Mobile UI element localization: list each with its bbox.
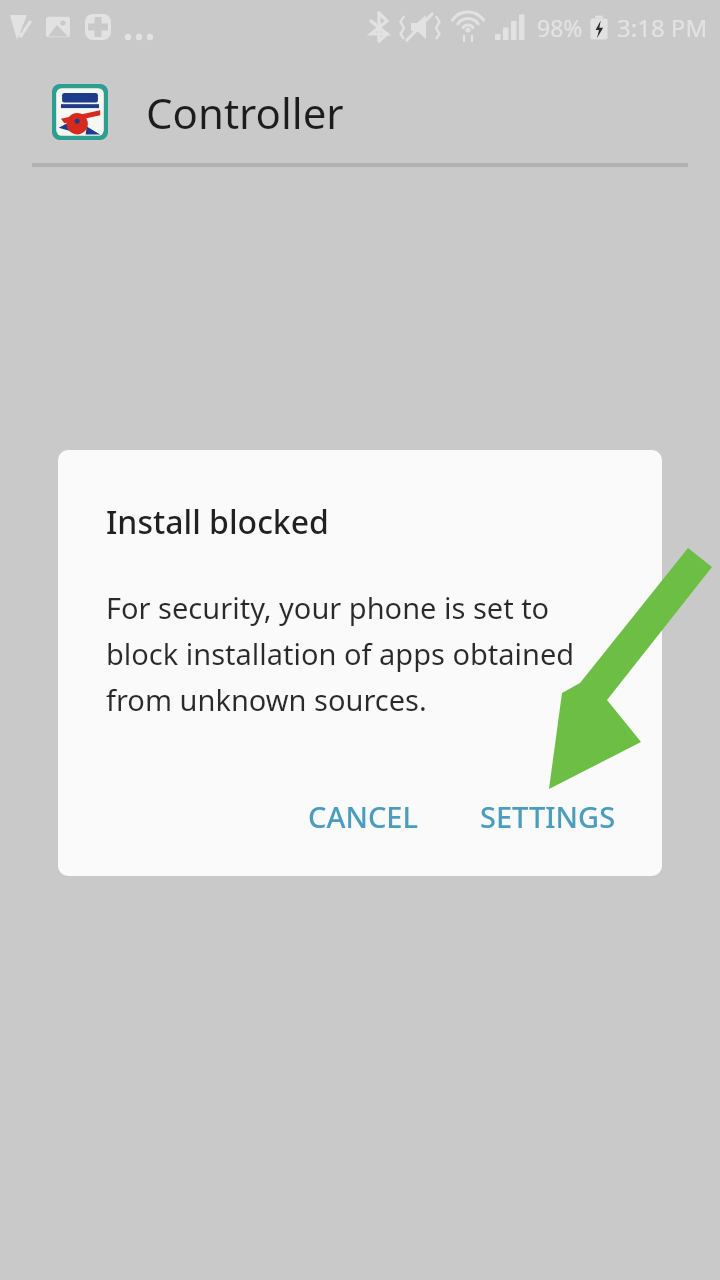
button[interactable]: CANCEL [294, 787, 432, 846]
staticText: 98% [537, 12, 583, 43]
staticText: SETTINGS [480, 797, 616, 836]
staticText: For security, your phone is set to block… [106, 588, 606, 720]
staticText: CANCEL [308, 797, 418, 836]
staticText: Install blocked [106, 500, 329, 544]
button[interactable]: App icon [52, 84, 108, 140]
staticText: Controller [146, 84, 344, 141]
button[interactable]: SETTINGS [466, 787, 630, 846]
staticText: 3:18 PM [617, 11, 708, 44]
